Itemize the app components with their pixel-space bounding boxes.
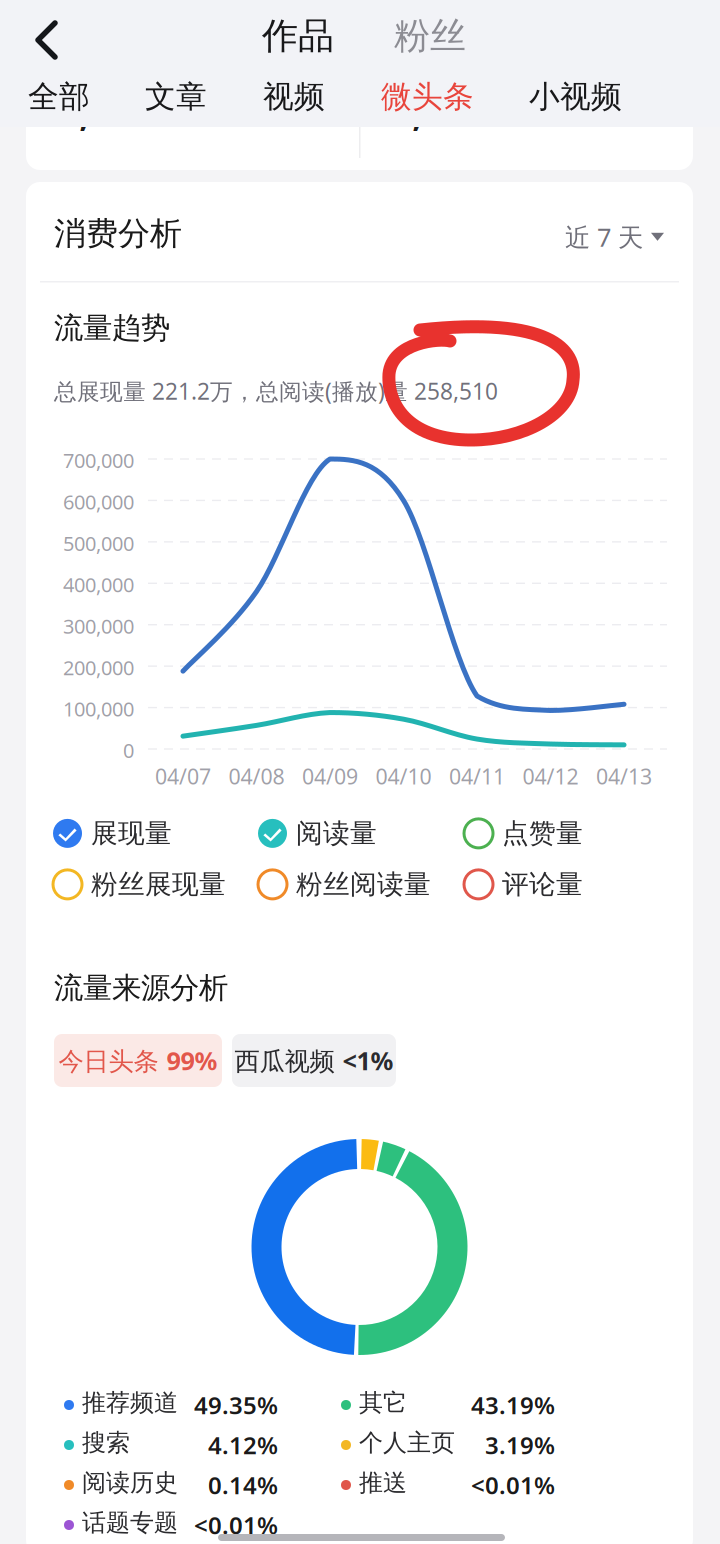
staticText: 视频 (263, 78, 325, 116)
staticText: 今日头条 99% (58, 1044, 217, 1077)
staticText: 04/12 (522, 762, 578, 790)
button[interactable]: 阅读历史 (64, 1471, 278, 1499)
staticText: 粉丝阅读量 (296, 868, 431, 901)
button[interactable]: 推荐频道 (64, 1391, 278, 1419)
button[interactable]: 全部 (28, 78, 90, 116)
button[interactable]: 粉丝阅读量 (258, 868, 431, 901)
button[interactable]: 点赞量 (464, 817, 583, 850)
staticText: 流量趋势 (54, 310, 170, 346)
staticText: 文章 (145, 78, 207, 116)
staticText: 300,000 (63, 613, 134, 639)
staticText: <0.01% (471, 1469, 555, 1501)
staticText: 04/10 (375, 762, 431, 790)
button[interactable]: 西瓜视频 <1% (232, 1034, 396, 1087)
staticText: 阅读量 (296, 817, 377, 850)
staticText: 粉丝 (394, 14, 466, 58)
staticText: 西瓜视频 <1% (234, 1044, 393, 1077)
button[interactable]: 微头条 (381, 78, 474, 116)
button[interactable]: 评论量 (464, 868, 583, 901)
button[interactable]: 粉丝 (394, 14, 466, 58)
staticText: <0.01% (194, 1509, 278, 1541)
staticText: 04/13 (596, 762, 652, 790)
staticText: 04/09 (302, 762, 358, 790)
button[interactable]: 今日头条 99% (54, 1034, 222, 1087)
button[interactable]: 视频 (263, 78, 325, 116)
button[interactable]: 文章 (145, 78, 207, 116)
button[interactable]: 其它 (341, 1391, 555, 1419)
staticText: 4,012 (56, 84, 159, 137)
button[interactable]: 搜索 (64, 1431, 278, 1459)
staticText: 总展现量 221.2万，总阅读(播放)量 258,510 (54, 376, 498, 406)
staticText: 0.14% (208, 1469, 278, 1501)
staticText: 微头条 (381, 78, 474, 116)
staticText: 小视频 (529, 78, 622, 116)
staticText: 展现量 (91, 817, 172, 850)
staticText: 200,000 (63, 654, 134, 681)
staticText: 04/11 (449, 762, 505, 790)
staticText: 3.19% (485, 1429, 555, 1461)
staticText: 600,000 (63, 488, 134, 515)
staticText: 700,000 (63, 447, 134, 474)
staticText: 4.12% (208, 1429, 278, 1461)
staticText: 43.19% (471, 1389, 555, 1421)
button[interactable]: 阅读量 (258, 817, 377, 850)
staticText: 04/08 (228, 762, 284, 790)
staticText: 7,583 (389, 84, 492, 137)
staticText: 推送 (359, 1468, 407, 1497)
staticText: 500,000 (63, 530, 134, 556)
button[interactable]: 小视频 (529, 78, 622, 116)
staticText: 作品 (262, 14, 334, 58)
button[interactable]: 个人主页 (341, 1431, 555, 1459)
staticText: 近 7 天 (565, 220, 643, 254)
staticText: 04/07 (155, 762, 211, 790)
staticText: 话题专题 (82, 1508, 178, 1537)
staticText: 全部 (28, 78, 90, 116)
staticText: 0 (123, 737, 134, 764)
staticText: 粉丝展现量 (91, 868, 226, 901)
staticText: 点赞量 (502, 817, 583, 850)
staticText: 个人主页 (359, 1428, 455, 1457)
button[interactable]: 展现量 (53, 817, 172, 850)
staticText: 评论量 (502, 868, 583, 901)
button[interactable]: 话题专题 (64, 1511, 278, 1539)
staticText: 400,000 (63, 571, 134, 598)
staticText: 阅读历史 (82, 1468, 178, 1497)
staticText: 100,000 (63, 696, 134, 722)
staticText: 搜索 (82, 1428, 130, 1457)
button[interactable]: 近 7 天 (565, 220, 664, 254)
button[interactable]: Back (18, 4, 76, 76)
staticText: 消费分析 (54, 214, 182, 253)
staticText: 流量来源分析 (54, 970, 228, 1006)
staticText: 推荐频道 (82, 1388, 178, 1417)
button[interactable]: 推送 (341, 1471, 555, 1499)
button[interactable]: 粉丝展现量 (53, 868, 226, 901)
button[interactable]: 作品 (262, 14, 334, 58)
staticText: 49.35% (194, 1389, 278, 1421)
staticText: 其它 (359, 1388, 407, 1417)
